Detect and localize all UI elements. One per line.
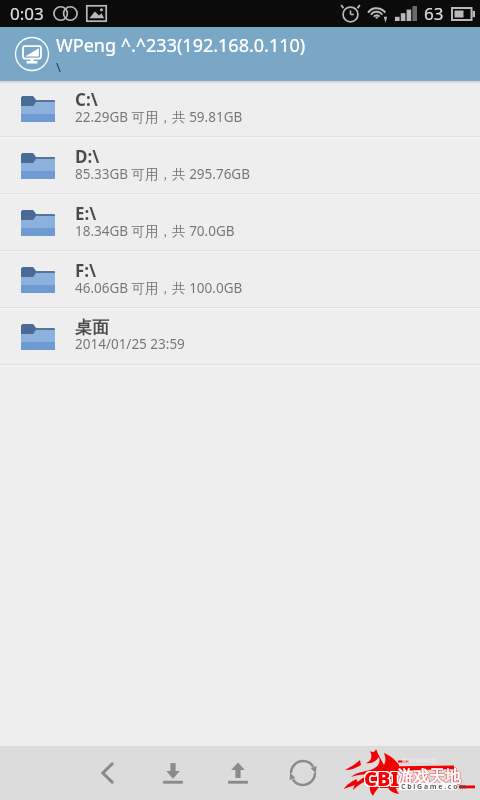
button[interactable]: F:\ [0,252,480,309]
staticText: CBI [364,765,400,792]
staticText: CBI [364,764,400,791]
button[interactable]: 桌面 [0,309,480,366]
staticText: 2014/01/25 23:59 [75,335,185,353]
staticText: CBI [363,766,399,793]
staticText: 63 [424,2,444,25]
staticText: CBI [365,766,401,793]
button[interactable]: Download [157,757,189,789]
button[interactable]: WPeng ^.^233(192.168.0.110) [0,27,480,81]
staticText: CBI [365,765,401,792]
staticText: 游戏天地 [396,767,460,787]
staticText: 桌面 [75,317,109,338]
staticText: D:\ [75,145,100,168]
staticText: 游戏天地 [397,768,461,788]
staticText: 最好的游戏社区 [402,757,437,763]
staticText: 46.06GB 可用，共 100.0GB [75,279,243,297]
staticText: CBI [364,766,400,793]
staticText: CBI [365,764,401,791]
staticText: C:\ [75,88,98,111]
staticText: \ [56,58,61,76]
staticText: WPeng ^.^233(192.168.0.110) [56,33,306,58]
staticText: 游戏天地 [398,767,462,787]
staticText: 游戏天地 [397,767,461,787]
staticText: 游戏天地 [397,766,461,786]
staticText: F:\ [75,259,97,282]
button[interactable]: D:\ [0,138,480,195]
staticText: 22.29GB 可用，共 59.81GB [75,108,243,126]
staticText: E:\ [75,202,97,225]
button[interactable]: Back [92,757,124,789]
staticText: CbiGame.com [401,782,468,792]
button[interactable]: Refresh [287,757,319,789]
staticText: 0:03 [10,2,44,25]
button[interactable]: C:\ [0,81,480,138]
staticText: CBI [363,764,399,791]
button[interactable]: Upload [222,757,254,789]
button[interactable]: E:\ [0,195,480,252]
staticText: CBI [363,765,399,792]
staticText: 85.33GB 可用，共 295.76GB [75,165,250,183]
staticText: 18.34GB 可用，共 70.0GB [75,222,235,240]
